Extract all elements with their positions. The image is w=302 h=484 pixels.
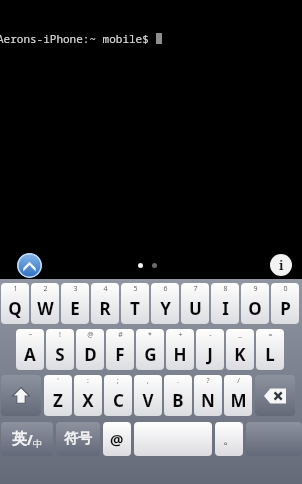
staticText: i: [279, 256, 284, 274]
button[interactable]: ~: [16, 329, 44, 370]
button[interactable]: @: [103, 422, 131, 456]
button[interactable]: 4: [91, 283, 119, 324]
staticText: :: [87, 376, 89, 386]
staticText: Q: [8, 297, 22, 320]
staticText: ': [57, 376, 59, 386]
button[interactable]: =: [256, 329, 284, 370]
staticText: J: [207, 343, 213, 366]
staticText: O: [248, 297, 262, 320]
staticText: E: [70, 297, 80, 320]
button[interactable]: 1: [1, 283, 29, 324]
button[interactable]: Backspace: [255, 375, 295, 416]
button[interactable]: Return: [246, 422, 302, 456]
staticText: 符号: [64, 430, 92, 448]
staticText: 9: [253, 284, 258, 294]
staticText: W: [37, 297, 54, 320]
staticText: _: [238, 330, 242, 340]
staticText: 中: [33, 438, 42, 449]
button[interactable]: 0: [271, 283, 299, 324]
staticText: 2: [43, 284, 48, 294]
button[interactable]: .: [164, 375, 192, 416]
button[interactable]: -: [196, 329, 224, 370]
button[interactable]: Shift: [1, 375, 41, 416]
staticText: !: [59, 330, 61, 340]
staticText: R: [99, 297, 111, 320]
staticText: 。: [223, 431, 236, 447]
staticText: 5: [133, 284, 138, 294]
staticText: ?: [206, 376, 210, 386]
button[interactable]: 7: [181, 283, 209, 324]
staticText: I: [222, 297, 229, 320]
staticText: G: [144, 343, 157, 366]
button[interactable]: _: [226, 329, 254, 370]
staticText: /: [27, 430, 33, 449]
staticText: 6: [163, 284, 168, 294]
button[interactable]: 英: [1, 422, 53, 456]
staticText: 1: [13, 284, 18, 294]
staticText: U: [189, 297, 202, 320]
staticText: 7: [193, 284, 198, 294]
button[interactable]: ,: [134, 375, 162, 416]
button[interactable]: ': [44, 375, 72, 416]
button[interactable]: ?: [194, 375, 222, 416]
staticText: V: [142, 389, 154, 412]
staticText: K: [234, 343, 246, 366]
button[interactable]: *: [136, 329, 164, 370]
staticText: Aerons-iPhone:~ mobile$: [0, 31, 156, 46]
button[interactable]: 3: [61, 283, 89, 324]
button[interactable]: 符号: [56, 422, 100, 456]
button[interactable]: Info: [270, 254, 292, 276]
staticText: X: [82, 389, 94, 412]
button[interactable]: 9: [241, 283, 269, 324]
button[interactable]: Space: [134, 422, 212, 456]
staticText: /: [237, 376, 240, 386]
staticText: P: [280, 297, 291, 320]
staticText: 4: [103, 284, 108, 294]
button[interactable]: +: [166, 329, 194, 370]
staticText: D: [84, 343, 97, 366]
staticText: A: [24, 343, 36, 366]
staticText: M: [230, 389, 247, 412]
button[interactable]: 8: [211, 283, 239, 324]
staticText: ;: [117, 376, 119, 386]
staticText: 0: [283, 284, 288, 294]
staticText: #: [118, 330, 123, 340]
staticText: 8: [223, 284, 228, 294]
button[interactable]: @: [76, 329, 104, 370]
staticText: +: [178, 330, 183, 340]
staticText: -: [209, 330, 212, 340]
staticText: B: [172, 389, 184, 412]
staticText: ,: [147, 376, 149, 386]
staticText: ~: [28, 330, 33, 340]
button[interactable]: 6: [151, 283, 179, 324]
staticText: 3: [73, 284, 78, 294]
staticText: Y: [160, 297, 171, 320]
staticText: *: [148, 330, 152, 340]
staticText: C: [113, 389, 124, 412]
staticText: L: [265, 343, 275, 366]
button[interactable]: :: [74, 375, 102, 416]
button[interactable]: !: [46, 329, 74, 370]
button[interactable]: #: [106, 329, 134, 370]
button[interactable]: /: [224, 375, 252, 416]
button[interactable]: 2: [31, 283, 59, 324]
button[interactable]: ;: [104, 375, 132, 416]
button[interactable]: 。: [215, 422, 243, 456]
staticText: 英: [12, 430, 27, 449]
staticText: N: [201, 389, 215, 412]
button[interactable]: 5: [121, 283, 149, 324]
staticText: =: [268, 330, 273, 340]
button[interactable]: Aerons-iPhone:~ mobile$: [0, 0, 302, 279]
button[interactable]: Expand toolbar: [17, 253, 42, 278]
staticText: Z: [53, 389, 63, 412]
staticText: .: [177, 376, 179, 386]
staticText: S: [55, 343, 65, 366]
staticText: F: [115, 343, 125, 366]
staticText: @: [110, 429, 124, 449]
staticText: T: [130, 297, 140, 320]
staticText: @: [87, 330, 94, 340]
staticText: H: [173, 343, 187, 366]
